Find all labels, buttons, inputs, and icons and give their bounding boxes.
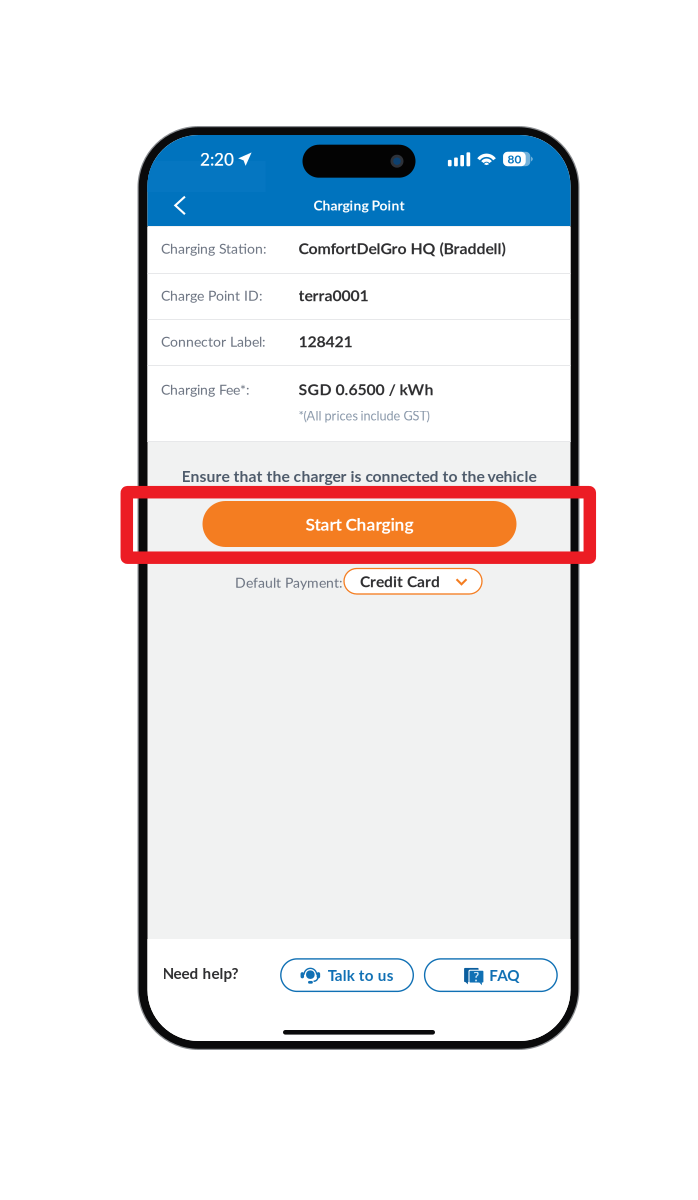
- staticText: Start Charging: [305, 514, 413, 534]
- staticText: 128421: [298, 331, 352, 350]
- button[interactable]: ?: [425, 959, 557, 991]
- staticText: Charge Point ID:: [161, 287, 263, 304]
- button[interactable]: Start Charging: [202, 501, 516, 547]
- button[interactable]: Back: [160, 188, 200, 222]
- staticText: Charging Fee*:: [161, 381, 250, 398]
- staticText: SGD 0.6500 / kWh: [298, 379, 433, 398]
- staticText: Credit Card: [360, 572, 440, 591]
- button[interactable]: Talk to us: [281, 959, 413, 991]
- staticText: Charging Point: [313, 197, 404, 213]
- staticText: Charging Station:: [161, 240, 267, 257]
- staticText: ?: [473, 969, 479, 984]
- staticText: 80: [507, 152, 521, 166]
- staticText: *(All prices include GST): [298, 408, 429, 423]
- staticText: ComfortDelGro HQ (Braddell): [298, 238, 505, 257]
- staticText: Talk to us: [328, 966, 394, 984]
- button[interactable]: Credit Card: [344, 568, 482, 594]
- staticText: Need help?: [162, 964, 238, 982]
- staticText: Ensure that the charger is connected to …: [181, 467, 536, 485]
- staticText: 2:20: [200, 149, 234, 169]
- staticText: FAQ: [489, 966, 519, 984]
- staticText: Default Payment:: [235, 574, 343, 591]
- staticText: Connector Label:: [161, 333, 266, 350]
- staticText: terra0001: [298, 285, 368, 304]
